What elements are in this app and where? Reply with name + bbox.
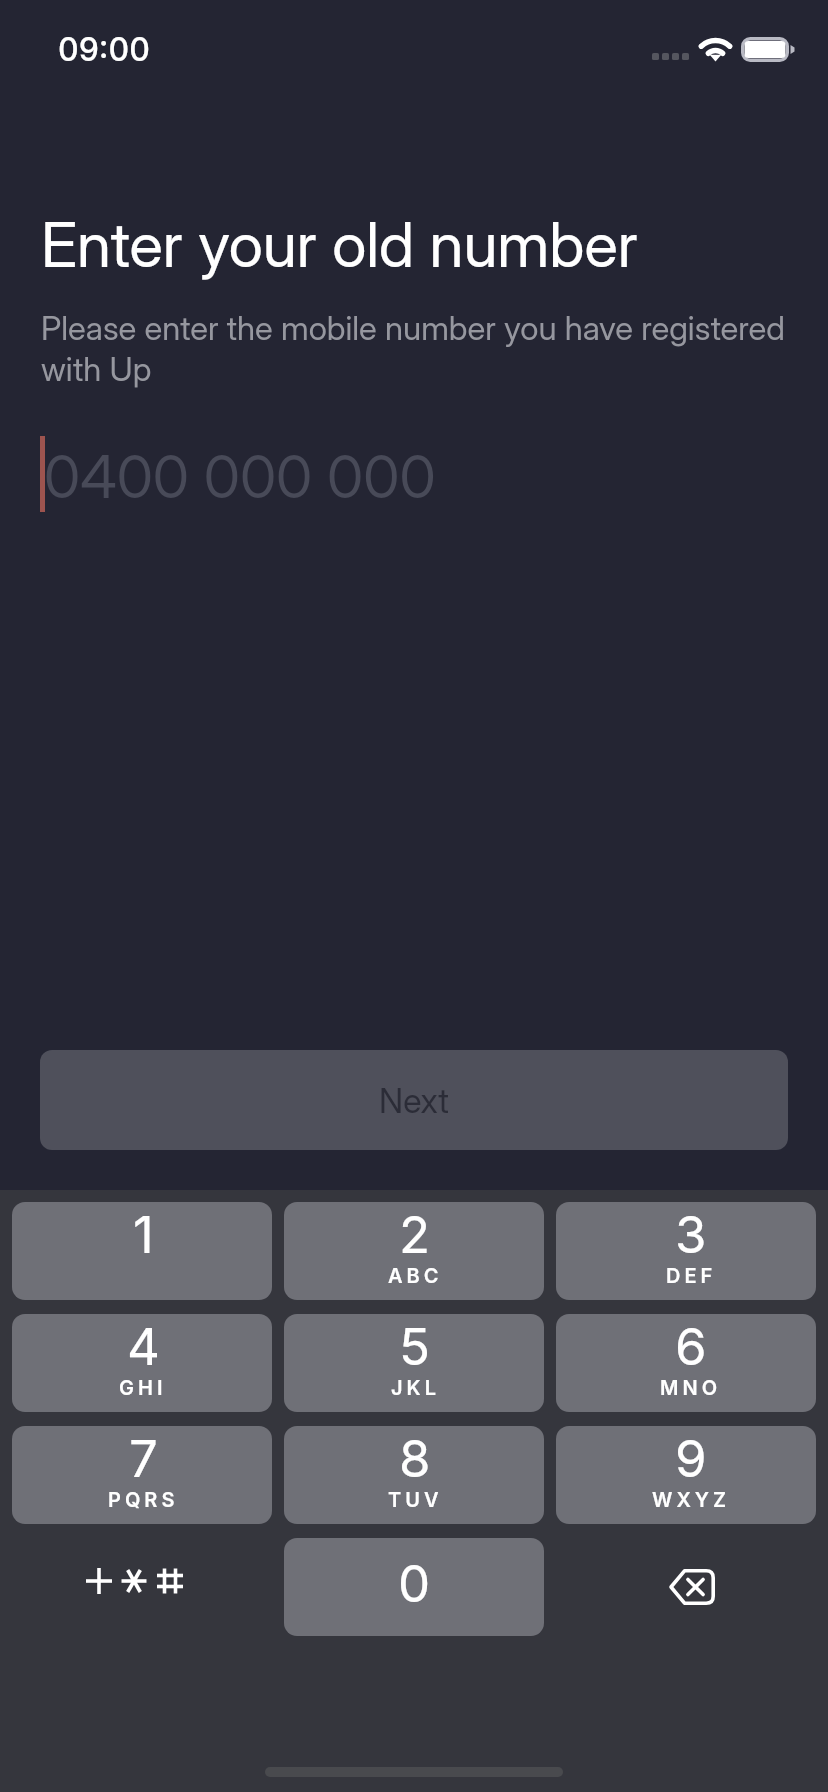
button[interactable]: 8 (284, 1426, 544, 1524)
button[interactable]: 9 (556, 1426, 816, 1524)
button[interactable]: 4 (12, 1314, 272, 1412)
staticText: GHI (119, 1376, 167, 1400)
button[interactable]: 1 (12, 1202, 272, 1300)
button[interactable]: 3 (556, 1202, 816, 1300)
button[interactable]: 6 (556, 1314, 816, 1412)
staticText: 1 (133, 1204, 154, 1266)
button[interactable]: Delete (556, 1538, 816, 1636)
staticText: PQRS (108, 1488, 179, 1512)
staticText: 0400 000 000 (44, 441, 436, 512)
button[interactable]: 7 (12, 1426, 272, 1524)
staticText: Enter your old number (41, 207, 638, 282)
button[interactable]: 5 (284, 1314, 544, 1412)
staticText: 09:00 (58, 30, 150, 69)
staticText: TUV (388, 1488, 443, 1512)
staticText: 2 (399, 1204, 431, 1266)
button[interactable]: Next (40, 1050, 788, 1150)
staticText: 6 (675, 1316, 707, 1378)
staticText: 4 (127, 1316, 160, 1378)
button[interactable]: 2 (284, 1202, 544, 1300)
button[interactable]: 0 (284, 1538, 544, 1636)
staticText: 7 (129, 1428, 158, 1490)
staticText: MNO (660, 1376, 722, 1400)
staticText: WXYZ (652, 1488, 731, 1512)
staticText: JKL (391, 1376, 440, 1400)
staticText: 9 (675, 1428, 707, 1490)
button[interactable]: Plus star hash (12, 1538, 272, 1636)
staticText: 3 (675, 1204, 707, 1266)
staticText: 8 (399, 1428, 431, 1490)
staticText: 0 (398, 1553, 431, 1615)
staticText: Next (379, 1080, 449, 1121)
staticText: ABC (388, 1264, 443, 1288)
staticText: DEF (666, 1264, 717, 1288)
staticText: 5 (399, 1316, 431, 1378)
staticText: Please enter the mobile number you have … (41, 308, 801, 389)
